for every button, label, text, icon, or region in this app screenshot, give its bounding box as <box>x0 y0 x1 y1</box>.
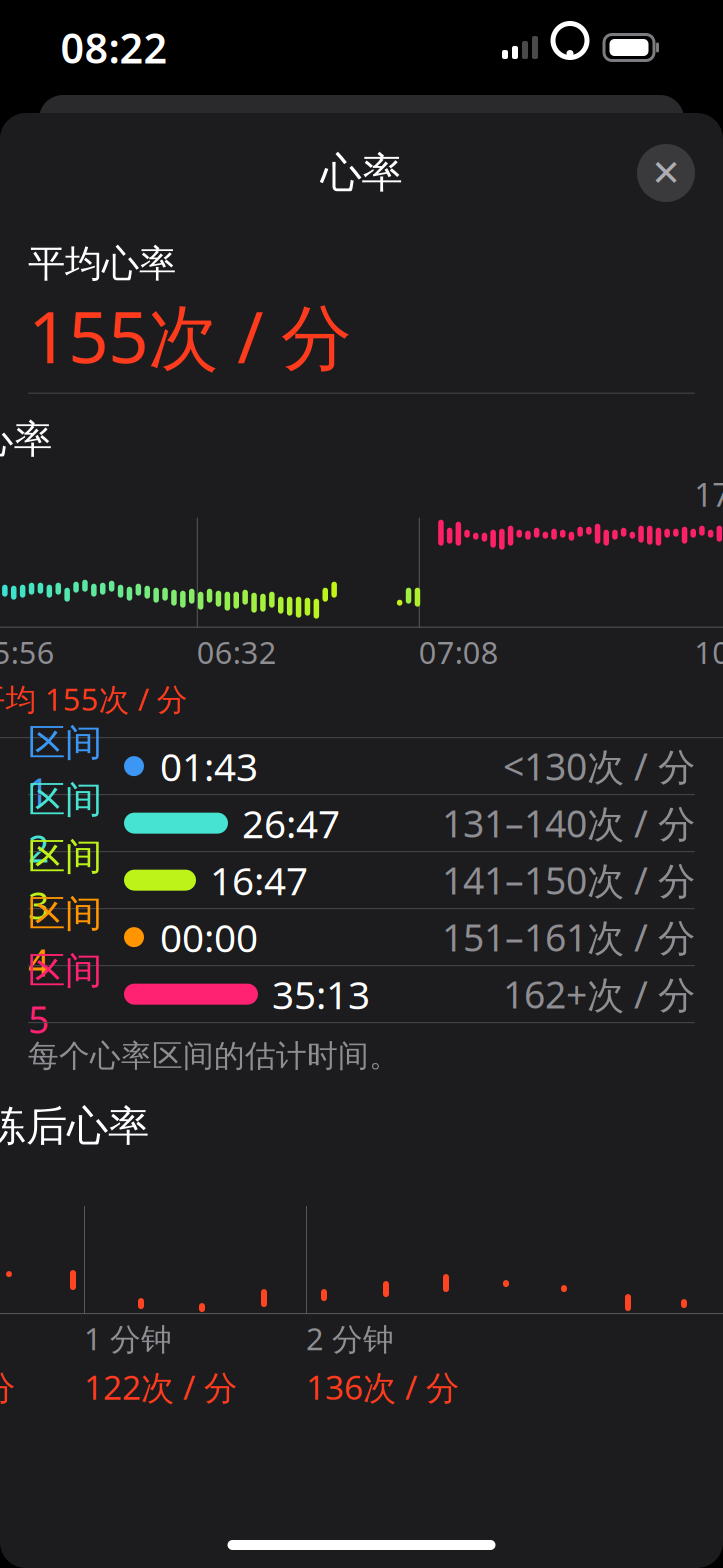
staticText: 00:00 <box>160 911 258 963</box>
staticText: 179 <box>694 473 723 516</box>
button[interactable]: 区间 1 <box>0 738 723 794</box>
staticText: 心率 <box>0 416 53 463</box>
staticText: 08:22 <box>60 20 167 75</box>
staticText: 体能训练后心率 <box>0 1101 149 1152</box>
staticText: 122次 / 分 <box>84 1365 237 1409</box>
staticText: 区间 5 <box>28 945 102 1044</box>
button[interactable]: 区间 2 <box>0 795 723 851</box>
staticText: 131–140次 / 分 <box>442 798 695 848</box>
staticText: 心率 <box>320 148 402 198</box>
staticText: 01:43 <box>160 740 258 792</box>
staticText: 06:32 <box>197 632 277 672</box>
staticText: 平均 155次 / 分 <box>0 678 188 719</box>
staticText: 141–150次 / 分 <box>442 855 695 905</box>
button[interactable]: 关闭 <box>637 144 695 202</box>
staticText: 136次 / 分 <box>306 1365 459 1409</box>
staticText: 26:47 <box>242 797 340 849</box>
staticText: 区间 4 <box>28 888 102 987</box>
staticText: ✕ <box>651 153 681 193</box>
staticText: 每个心率区间的估计时间。 <box>28 1037 400 1075</box>
button[interactable]: 区间 5 <box>0 966 723 1022</box>
staticText: 05:56 <box>0 632 55 672</box>
button[interactable]: 区间 3 <box>0 852 723 908</box>
staticText: 2 分钟 <box>306 1318 394 1359</box>
staticText: 07:08 <box>419 632 499 672</box>
staticText: 172次 / 分 <box>0 1365 15 1409</box>
staticText: 区间 3 <box>28 831 102 930</box>
staticText: 151–161次 / 分 <box>442 912 695 962</box>
button[interactable]: 区间 4 <box>0 909 723 965</box>
staticText: 1 分钟 <box>84 1318 172 1359</box>
staticText: 平均心率 <box>28 241 176 287</box>
staticText: 162+次 / 分 <box>503 969 695 1019</box>
staticText: 106 <box>694 632 723 672</box>
staticText: 区间 2 <box>28 774 102 873</box>
staticText: 155次 / 分 <box>28 289 352 383</box>
staticText: 区间 1 <box>28 717 102 816</box>
staticText: 35:13 <box>272 968 370 1020</box>
staticText: <130次 / 分 <box>503 741 695 791</box>
staticText: 16:47 <box>210 854 308 906</box>
